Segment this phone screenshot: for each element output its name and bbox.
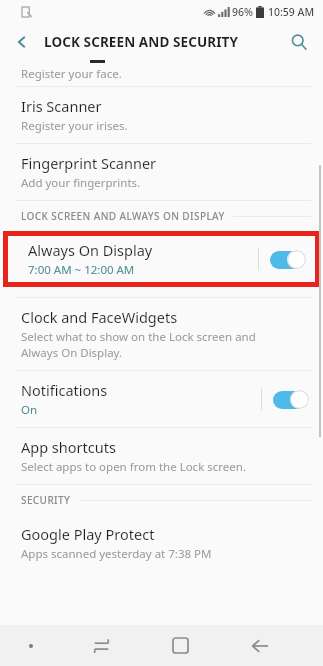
button[interactable]: Indicator [0, 625, 62, 666]
button[interactable]: Toggle Always On Display [270, 250, 306, 269]
button[interactable]: Always On Display [3, 231, 320, 287]
staticText: Notifications [21, 380, 108, 400]
button[interactable]: Fingerprint Scanner [0, 144, 323, 200]
staticText: LOCK SCREEN AND SECURITY [44, 33, 238, 51]
staticText: Always On Display. [21, 345, 123, 361]
staticText: 10:59 AM [268, 5, 315, 19]
button[interactable]: Register your face. [0, 60, 323, 86]
staticText: App shortcuts [21, 437, 116, 457]
button[interactable]: Search [283, 26, 315, 58]
staticText: LOCK SCREEN AND ALWAYS ON DISPLAY [21, 209, 225, 223]
button[interactable]: Google Play Protect [0, 515, 323, 571]
staticText: Google Play Protect [21, 524, 155, 544]
button[interactable]: Back [6, 26, 38, 58]
button[interactable]: Recents [62, 625, 141, 666]
staticText: Apps scanned yesterday at 7:38 PM [21, 546, 212, 562]
button[interactable]: Notifications [0, 371, 323, 427]
staticText: Select apps to open from the Lock screen… [21, 459, 246, 475]
staticText: Register your face. [21, 66, 122, 82]
button[interactable]: Toggle Notifications [273, 390, 309, 409]
staticText: Select what to show on the Lock screen a… [21, 329, 256, 345]
staticText: 7:00 AM ~ 12:00 AM [28, 262, 135, 278]
staticText: Add your fingerprints. [21, 175, 141, 191]
staticText: Clock and FaceWidgets [21, 307, 178, 327]
staticText: Always On Display [28, 240, 153, 260]
staticText: 96% [232, 5, 253, 19]
staticText: Register your irises. [21, 118, 128, 134]
staticText: SECURITY [21, 493, 71, 507]
button[interactable]: Back [220, 625, 299, 666]
staticText: On [21, 402, 38, 418]
staticText: Fingerprint Scanner [21, 153, 157, 173]
button[interactable]: Clock and FaceWidgets [0, 298, 323, 370]
button[interactable]: Home [141, 625, 220, 666]
button[interactable]: App shortcuts [0, 428, 323, 484]
staticText: Iris Scanner [21, 96, 102, 116]
button[interactable]: Iris Scanner [0, 87, 323, 143]
